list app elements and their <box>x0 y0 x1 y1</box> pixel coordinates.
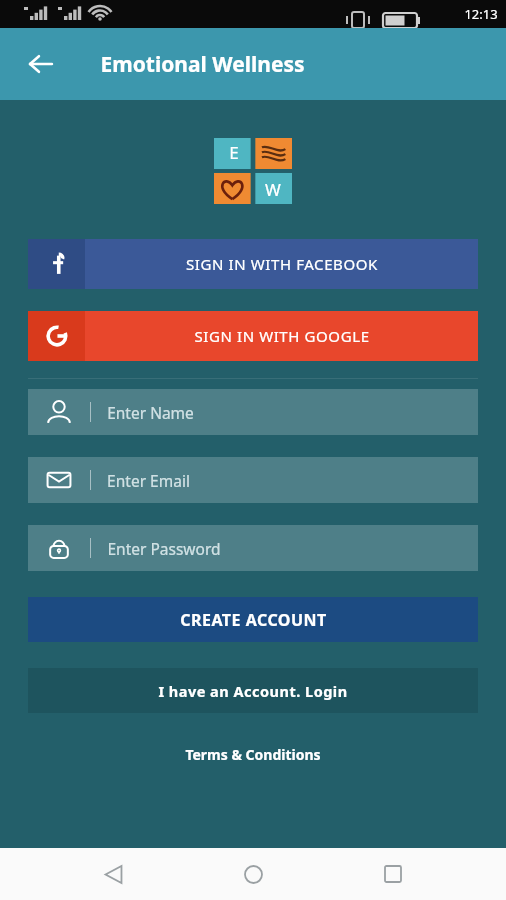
staticText: Emotional Wellness <box>100 50 305 79</box>
staticText: Terms & Conditions <box>185 745 321 764</box>
staticText: Enter Password <box>107 538 221 559</box>
button[interactable]: SIGN IN WITH GOOGLE <box>28 311 478 361</box>
staticText: Enter Name <box>107 402 194 423</box>
button[interactable]: Enter Email <box>28 457 478 503</box>
button[interactable]: I have an Account. Login <box>28 668 478 713</box>
staticText: W <box>265 178 281 201</box>
button[interactable]: SIGN IN WITH FACEBOOK <box>28 239 478 289</box>
button[interactable]: Terms & Conditions <box>0 739 506 770</box>
staticText: 12:13 <box>464 5 498 23</box>
button[interactable]: Recent apps <box>366 848 420 900</box>
staticText: I have an Account. Login <box>158 681 348 701</box>
button[interactable]: CREATE ACCOUNT <box>28 597 478 642</box>
button[interactable]: Back <box>18 41 64 87</box>
staticText: CREATE ACCOUNT <box>180 609 327 631</box>
button[interactable]: Back <box>86 848 140 900</box>
staticText: SIGN IN WITH GOOGLE <box>194 326 370 346</box>
button[interactable]: Enter Name <box>28 389 478 435</box>
button[interactable]: Enter Password <box>28 525 478 571</box>
staticText: Enter Email <box>107 470 190 491</box>
button[interactable]: Home <box>226 848 280 900</box>
staticText: E <box>229 141 239 164</box>
staticText: SIGN IN WITH FACEBOOK <box>186 254 378 274</box>
